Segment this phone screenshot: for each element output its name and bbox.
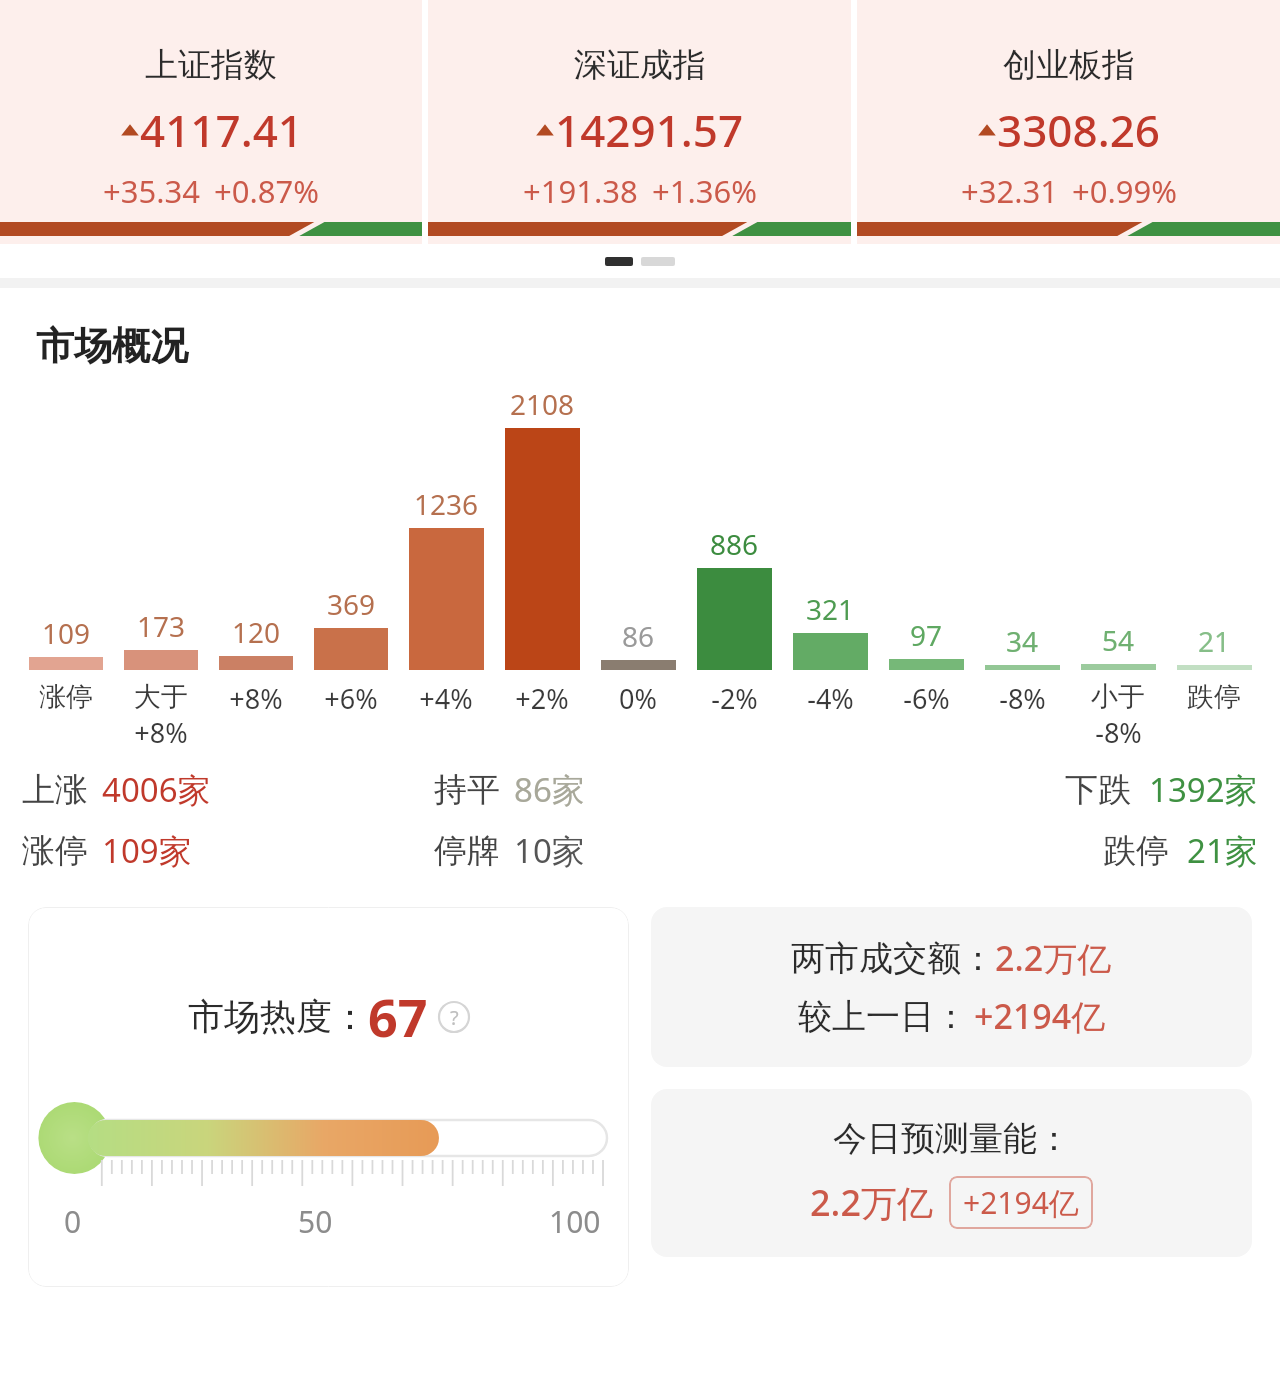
staticText: +2% — [515, 680, 569, 717]
staticText: 86 — [622, 617, 655, 655]
staticText: 1236 — [414, 485, 479, 523]
staticText: 涨停 — [22, 830, 88, 872]
staticText: +6% — [324, 680, 378, 717]
button[interactable]: 两市成交额： — [651, 907, 1252, 1067]
button[interactable]: 市场热度说明 — [438, 1001, 470, 1033]
staticText: 下跌 — [1065, 769, 1131, 811]
staticText: 0 — [64, 1201, 82, 1242]
staticText: 109 — [42, 614, 91, 652]
staticText: -4% — [807, 680, 854, 717]
staticText: +2194亿 — [974, 993, 1106, 1039]
staticText: +0.87% — [214, 170, 319, 212]
staticText: 上涨 — [22, 769, 88, 811]
staticText: 97 — [910, 616, 943, 654]
staticText: 14291.57 — [555, 100, 744, 160]
staticText: 886 — [710, 525, 759, 563]
staticText: 创业板指 — [1003, 44, 1135, 86]
button[interactable]: 市场热度： — [28, 907, 629, 1287]
staticText: +191.38 — [523, 170, 638, 212]
staticText: 4006家 — [102, 767, 211, 812]
staticText: 54 — [1102, 621, 1135, 659]
staticText: -2% — [711, 680, 758, 717]
staticText: 100 — [549, 1201, 601, 1242]
staticText: 跌停 — [1103, 830, 1169, 872]
staticText: 较上一日： — [798, 995, 968, 1038]
staticText: 369 — [327, 585, 376, 623]
staticText: 21 — [1198, 622, 1231, 660]
staticText: -8% — [999, 680, 1046, 717]
staticText: +35.34 — [103, 170, 200, 212]
staticText: 173 — [137, 607, 186, 645]
staticText: 0% — [619, 680, 657, 717]
staticText: +2194亿 — [963, 1182, 1079, 1223]
staticText: +8% — [134, 714, 188, 751]
staticText: 4117.41 — [140, 100, 303, 160]
staticText: 2.2万亿 — [810, 1178, 933, 1227]
staticText: 涨停 — [39, 680, 93, 714]
staticText: 两市成交额： — [791, 937, 995, 980]
staticText: 市场热度： — [188, 994, 368, 1039]
button[interactable]: 今日预测量能： — [651, 1089, 1252, 1257]
staticText: 21家 — [1187, 828, 1258, 873]
staticText: 2108 — [510, 385, 575, 423]
staticText: 上证指数 — [145, 44, 277, 86]
staticText: 小于 — [1091, 680, 1145, 714]
staticText: -6% — [903, 680, 950, 717]
staticText: 3308.26 — [997, 100, 1160, 160]
staticText: 1392家 — [1149, 767, 1258, 812]
staticText: 50 — [298, 1201, 333, 1242]
staticText: 34 — [1006, 622, 1039, 660]
staticText: 67 — [368, 981, 428, 1052]
staticText: -8% — [1095, 714, 1142, 751]
staticText: 120 — [232, 613, 281, 651]
button[interactable]: 上证指数 — [0, 0, 422, 244]
staticText: 大于 — [134, 680, 188, 714]
staticText: ? — [450, 1004, 459, 1031]
staticText: 2.2万亿 — [995, 935, 1112, 981]
staticText: 深证成指 — [574, 44, 706, 86]
button[interactable]: 创业板指 — [857, 0, 1280, 244]
staticText: 市场概况 — [36, 322, 188, 370]
staticText: +32.31 — [961, 170, 1058, 212]
staticText: +0.99% — [1072, 170, 1177, 212]
staticText: +4% — [419, 680, 473, 717]
staticText: 109家 — [102, 828, 192, 873]
staticText: 86家 — [514, 767, 585, 812]
staticText: 停牌 — [434, 830, 500, 872]
staticText: 持平 — [434, 769, 500, 811]
staticText: 今日预测量能： — [833, 1117, 1071, 1160]
staticText: 321 — [806, 590, 855, 628]
button[interactable]: 深证成指 — [428, 0, 851, 244]
staticText: 10家 — [514, 828, 585, 873]
staticText: +8% — [229, 680, 283, 717]
staticText: +1.36% — [652, 170, 757, 212]
staticText: 跌停 — [1187, 680, 1241, 714]
